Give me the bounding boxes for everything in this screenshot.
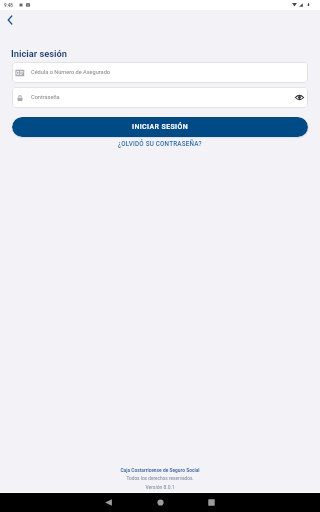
staticText: INICIAR SESIÓN xyxy=(132,123,189,131)
staticText: Cédula o Número de Asegurado xyxy=(31,69,110,76)
button[interactable]: Show password xyxy=(293,91,306,104)
button[interactable]: Back xyxy=(88,493,129,512)
button[interactable]: ¿OLVIDÓ SU CONTRASEÑA? xyxy=(110,138,210,149)
staticText: ¿OLVIDÓ SU CONTRASEÑA? xyxy=(118,140,202,147)
staticText: Todos los derechos reservados. xyxy=(126,476,194,482)
staticText: 9:48 xyxy=(4,3,13,8)
staticText: Contraseña xyxy=(31,94,60,101)
button[interactable]: Back xyxy=(2,12,18,28)
button[interactable]: Cédula o Número de Asegurado xyxy=(12,62,308,83)
staticText: Caja Costarricense de Seguro Social xyxy=(120,468,200,474)
button[interactable]: Recents xyxy=(191,493,232,512)
button[interactable]: INICIAR SESIÓN xyxy=(12,117,308,137)
button[interactable]: Contraseña xyxy=(12,87,308,108)
staticText: Iniciar sesión xyxy=(11,48,67,59)
button[interactable]: Home xyxy=(140,493,181,512)
staticText: Versión 8.0.1 xyxy=(145,484,175,490)
